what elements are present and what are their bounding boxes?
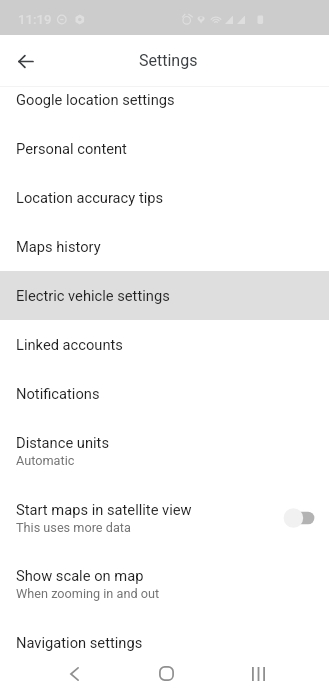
staticText: Maps history [16, 238, 101, 255]
staticText: 11:19 [18, 12, 52, 27]
staticText: Electric vehicle settings [16, 287, 170, 304]
staticText: Start maps in satellite view [16, 501, 192, 518]
staticText: Notifications [16, 385, 100, 402]
button[interactable]: Home [146, 653, 187, 694]
button[interactable]: Maps history [0, 222, 329, 271]
button[interactable]: Show scale on map [0, 551, 329, 617]
staticText: Google location settings [16, 91, 175, 108]
staticText: When zooming in and out [16, 586, 160, 601]
staticText: Linked accounts [16, 336, 123, 353]
button[interactable]: Recent apps [238, 653, 279, 694]
button[interactable]: Navigation settings [0, 618, 329, 667]
button[interactable]: Google location settings [0, 75, 329, 124]
staticText: This uses more data [16, 520, 131, 535]
button[interactable]: Back [54, 653, 95, 694]
button[interactable]: Start maps in satellite view [277, 503, 321, 533]
button[interactable]: Notifications [0, 369, 329, 418]
staticText: Distance units [16, 434, 109, 451]
staticText: Show scale on map [16, 567, 144, 584]
button[interactable]: Start maps in satellite view [0, 485, 329, 551]
button[interactable]: Distance units [0, 418, 329, 484]
button[interactable]: Navigate up [6, 41, 46, 81]
button[interactable]: Location accuracy tips [0, 173, 329, 222]
button[interactable]: Linked accounts [0, 320, 329, 369]
staticText: Automatic [16, 453, 75, 468]
button[interactable]: Personal content [0, 124, 329, 173]
staticText: Personal content [16, 140, 127, 157]
staticText: Settings [139, 51, 198, 70]
button[interactable]: Electric vehicle settings [0, 271, 329, 320]
staticText: Location accuracy tips [16, 189, 164, 206]
staticText: Navigation settings [16, 634, 143, 651]
